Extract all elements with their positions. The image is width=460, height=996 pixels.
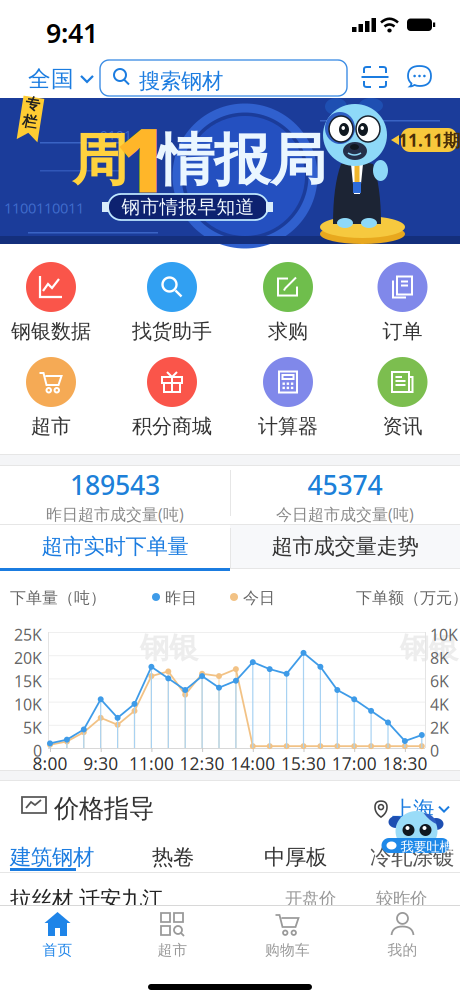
staticText: 情报局 [158,126,326,195]
staticText: 45374 [307,467,382,502]
staticText: 11.11期 [398,128,460,151]
staticText: 热卷 [152,844,194,870]
staticText: 18:30 [382,752,427,775]
staticText: 0101 [100,126,132,144]
button[interactable]: 冷轧涂镀 [370,844,454,870]
button[interactable]: 超市 [115,912,230,959]
staticText: 昨日 [165,588,197,608]
button[interactable]: 189543 [0,467,230,525]
staticText: 冷轧涂镀 [370,844,454,870]
staticText: 开盘价 [285,888,336,909]
button[interactable]: 我的 [345,912,460,959]
button[interactable]: 我要吐槽 [385,807,450,857]
button[interactable]: 热卷 [152,844,194,870]
staticText: 25K [14,624,42,645]
staticText: 15:30 [281,752,326,775]
staticText: 积分商城 [132,414,212,439]
staticText: 求购 [268,319,308,344]
staticText: 订单 [382,319,422,344]
button[interactable]: 求购 [263,262,313,344]
staticText: 首页 [42,941,72,959]
button[interactable]: 找货助手 [132,262,212,344]
button[interactable]: 购物车 [230,912,345,959]
button[interactable]: 超市实时下单量 [0,525,230,568]
staticText: 周 [72,126,128,195]
staticText: 超市成交量走势 [271,533,418,560]
button[interactable]: 扫一扫 [363,66,387,88]
staticText: 9:30 [83,752,118,775]
staticText: 超市实时下单量 [41,533,188,560]
staticText: 0 [33,740,42,761]
staticText: 找货助手 [132,319,212,344]
staticText: 2K [430,717,449,738]
staticText: 专 [23,95,38,113]
staticText: 上海 [392,796,434,822]
button[interactable]: 首页 [0,912,115,959]
staticText: 6K [430,670,449,692]
staticText: 全国 [28,65,74,93]
staticText: 下单额（万元） [356,588,460,608]
staticText: 今日超市成交量(吨) [276,503,414,525]
staticText: 8K [430,647,449,668]
staticText: 今日 [243,588,275,608]
button[interactable]: 钢银数据 [11,262,91,344]
button[interactable]: 超市成交量走势 [230,525,460,568]
staticText: 12:30 [180,752,225,775]
staticText: 钢银 [400,630,458,666]
button[interactable]: 订单 [377,262,427,344]
staticText: 资讯 [382,414,422,439]
staticText: 钢市情报早知道 [121,195,254,218]
button[interactable]: 全国 [28,65,94,93]
staticText: 11:00 [129,752,174,775]
staticText: 我的 [387,941,417,959]
button[interactable]: 超市 [26,357,76,439]
staticText: 中厚板 [264,844,327,870]
staticText: 10K [430,624,458,645]
staticText: 下单量（吨） [10,588,106,608]
staticText: 钢银 [140,630,198,666]
staticText: 1 [116,100,168,217]
staticText: 栏 [23,113,38,131]
staticText: 17:00 [332,752,377,775]
staticText: 5K [23,717,42,738]
staticText: 购物车 [265,941,310,959]
button[interactable]: 1100110011 [0,98,460,244]
staticText: 拉丝材 迁安九江 [10,886,163,912]
staticText: 钢银数据 [11,319,91,344]
staticText: 8:00 [32,752,67,775]
button[interactable]: 消息 [407,65,432,88]
staticText: 昨日超市成交量(吨) [46,503,184,525]
staticText: 4K [430,694,449,715]
staticText: 我要吐槽 [400,838,452,855]
staticText: 超市 [31,414,71,439]
staticText: 0 [430,740,439,761]
staticText: 建筑钢材 [10,844,94,870]
button[interactable]: 搜索钢材 [100,60,347,96]
button[interactable]: 积分商城 [132,357,212,439]
staticText: 超市 [157,941,187,959]
button[interactable]: 中厚板 [264,844,327,870]
staticText: 14:00 [230,752,275,775]
staticText: 10K [14,694,42,715]
button[interactable]: 上海 [374,796,450,822]
staticText: 189543 [70,467,160,502]
staticText: 20K [14,647,42,668]
staticText: 1100110011 [4,198,84,217]
button[interactable]: 建筑钢材 [10,844,94,870]
button[interactable]: 计算器 [258,357,318,439]
button[interactable]: 45374 [230,467,460,525]
staticText: 较昨价 [376,888,427,909]
staticText: 计算器 [258,414,318,439]
staticText: 搜索钢材 [139,68,223,94]
staticText: 15K [14,670,42,692]
button[interactable]: 资讯 [377,357,427,439]
staticText: 价格指导 [54,793,154,824]
staticText: 9:41 [46,15,98,50]
